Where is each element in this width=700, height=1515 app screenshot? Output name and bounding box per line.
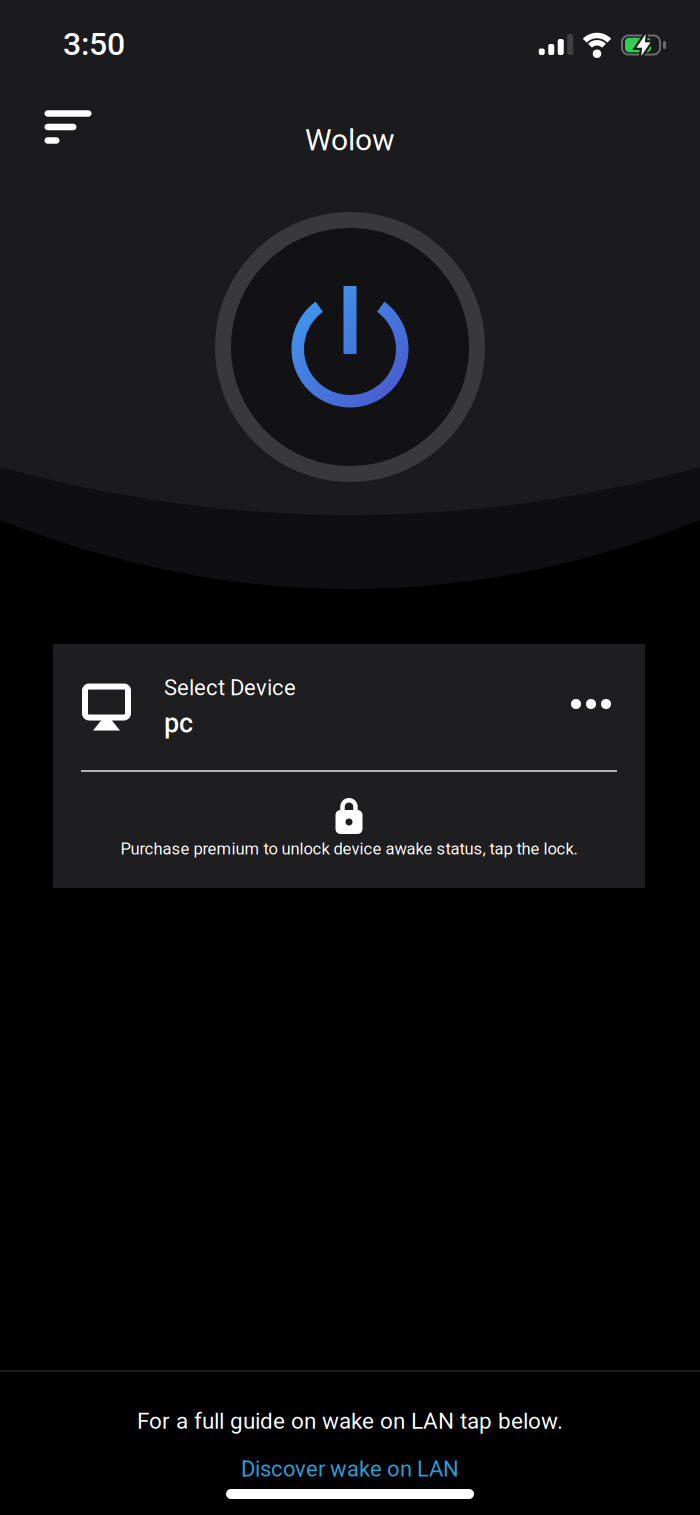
staticText: For a full guide on wake on LAN tap belo… bbox=[137, 1408, 563, 1434]
button[interactable]: Discover wake on LAN bbox=[241, 1456, 459, 1482]
staticText: pc bbox=[164, 708, 193, 739]
staticText: Discover wake on LAN bbox=[241, 1456, 459, 1482]
staticText: Wolow bbox=[305, 122, 395, 158]
button[interactable]: Unlock awake status bbox=[53, 772, 645, 858]
staticText: Purchase premium to unlock device awake … bbox=[120, 839, 577, 858]
staticText: 3:50 bbox=[63, 25, 125, 63]
button[interactable]: Select Device bbox=[53, 644, 645, 770]
button[interactable]: Power bbox=[215, 212, 485, 482]
button[interactable]: Menu bbox=[44, 110, 92, 144]
staticText: Select Device bbox=[164, 675, 296, 701]
button[interactable]: More options bbox=[571, 687, 611, 721]
